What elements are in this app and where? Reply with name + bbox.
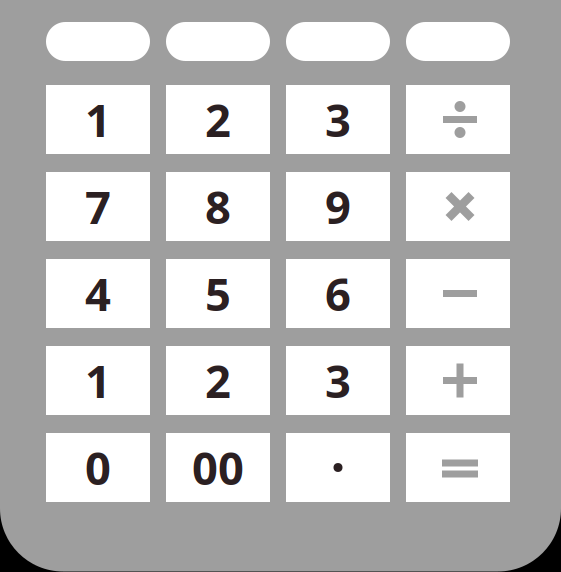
staticText: 8 bbox=[205, 176, 231, 237]
button[interactable]: 8 bbox=[166, 172, 270, 241]
button[interactable]: Function key 4 bbox=[406, 22, 510, 61]
button[interactable]: Decimal point bbox=[286, 433, 390, 502]
button[interactable]: 9 bbox=[286, 172, 390, 241]
button[interactable]: 2 bbox=[166, 85, 270, 154]
staticText: 0 bbox=[85, 437, 111, 498]
staticText: 2 bbox=[205, 350, 231, 411]
button[interactable]: 1 bbox=[46, 346, 150, 415]
staticText: 3 bbox=[325, 89, 351, 150]
staticText: 9 bbox=[325, 176, 351, 237]
staticText: 6 bbox=[325, 263, 351, 324]
button[interactable]: 3 bbox=[286, 85, 390, 154]
staticText: 1 bbox=[85, 350, 111, 411]
button[interactable]: 00 bbox=[166, 433, 270, 502]
button[interactable]: Minus bbox=[406, 259, 510, 328]
button[interactable]: 7 bbox=[46, 172, 150, 241]
button[interactable]: 0 bbox=[46, 433, 150, 502]
staticText: 2 bbox=[205, 89, 231, 150]
staticText: 4 bbox=[85, 263, 111, 324]
button[interactable]: Function key 3 bbox=[286, 22, 390, 61]
staticText: 00 bbox=[192, 437, 244, 498]
button[interactable]: 4 bbox=[46, 259, 150, 328]
button[interactable]: Divide bbox=[406, 85, 510, 154]
button[interactable]: Equals bbox=[406, 433, 510, 502]
button[interactable]: 1 bbox=[46, 85, 150, 154]
button[interactable]: Function key 2 bbox=[166, 22, 270, 61]
button[interactable]: 2 bbox=[166, 346, 270, 415]
button[interactable]: Plus bbox=[406, 346, 510, 415]
staticText: 3 bbox=[325, 350, 351, 411]
button[interactable]: Multiply bbox=[406, 172, 510, 241]
staticText: 1 bbox=[85, 89, 111, 150]
button[interactable]: 5 bbox=[166, 259, 270, 328]
button[interactable]: Function key 1 bbox=[46, 22, 150, 61]
staticText: 7 bbox=[85, 176, 111, 237]
button[interactable]: 6 bbox=[286, 259, 390, 328]
button[interactable]: 3 bbox=[286, 346, 390, 415]
staticText: 5 bbox=[205, 263, 231, 324]
